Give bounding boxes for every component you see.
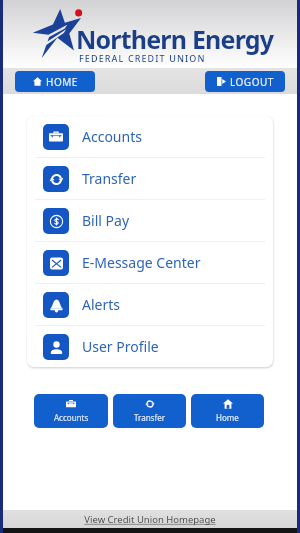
button[interactable]: E-Message Center [27,242,273,283]
button[interactable]: Transfer [27,158,273,199]
staticText: E-Message Center [82,253,201,272]
staticText: Alerts [82,295,120,314]
button[interactable]: Bill Pay [27,200,273,241]
staticText: HOME [46,75,78,89]
button[interactable]: Home [191,394,264,428]
button[interactable]: Alerts [27,284,273,325]
button[interactable]: User Profile [27,326,273,367]
button[interactable]: Transfer [113,394,186,428]
button[interactable]: Logout [205,71,285,92]
staticText: Transfer [82,169,137,188]
staticText: Bill Pay [82,211,130,230]
staticText: Transfer [134,412,166,423]
staticText: Accounts [82,127,142,146]
staticText: FEDERAL CREDIT UNION [79,52,206,64]
staticText: User Profile [82,337,159,356]
staticText: Home [216,412,239,423]
button[interactable]: View Credit Union Homepage [84,513,216,526]
button[interactable]: Accounts [34,394,108,428]
staticText: LOGOUT [230,75,274,89]
button[interactable]: Home [15,71,95,92]
staticText: Accounts [54,412,89,423]
button[interactable]: Accounts [27,116,273,157]
staticText: Northern Energy [76,22,274,56]
